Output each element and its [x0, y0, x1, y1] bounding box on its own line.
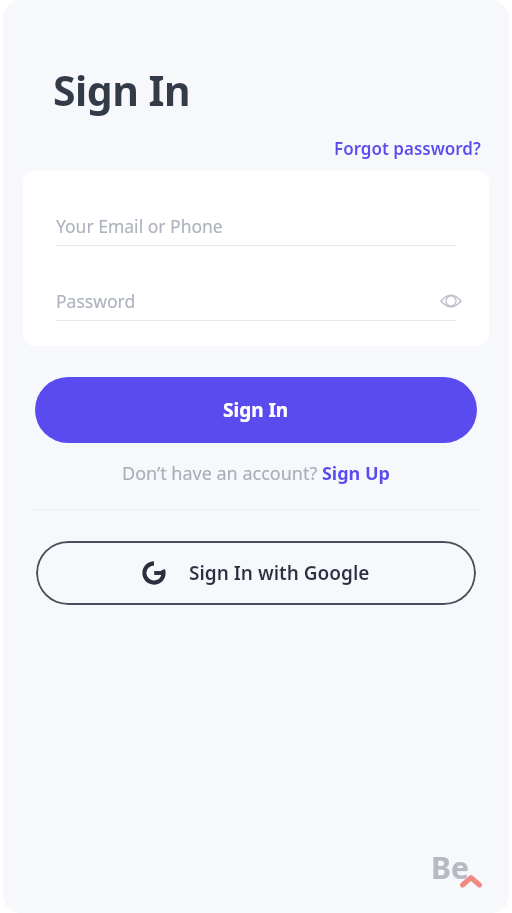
staticText: Password: [56, 289, 136, 313]
staticText: Be: [431, 847, 469, 888]
button[interactable]: Don’t have an account? Sign Up: [3, 461, 509, 486]
button[interactable]: Sign In with Google: [36, 541, 476, 605]
button[interactable]: Password: [23, 282, 489, 320]
button[interactable]: Show password: [437, 287, 465, 315]
staticText: Sign In: [53, 62, 191, 118]
button[interactable]: Sign In: [35, 377, 477, 443]
staticText: Sign In: [223, 397, 289, 423]
staticText: Don’t have an account? Sign Up: [122, 461, 390, 486]
button[interactable]: Forgot password?: [332, 135, 483, 162]
staticText: Sign In with Google: [189, 560, 370, 586]
staticText: Your Email or Phone: [56, 214, 223, 238]
staticText: Forgot password?: [334, 137, 481, 160]
button[interactable]: Your Email or Phone: [23, 207, 489, 245]
